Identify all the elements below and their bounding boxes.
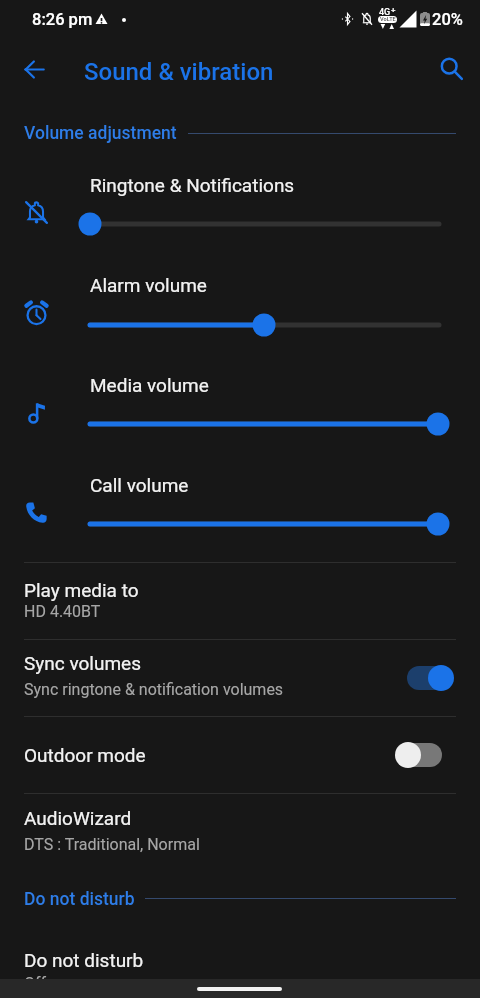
staticText: Do not disturb (24, 949, 144, 971)
staticText: Call volume (90, 474, 189, 496)
button[interactable]: Back (12, 47, 56, 91)
button[interactable] (0, 563, 480, 639)
button[interactable] (0, 930, 480, 998)
staticText: Off (24, 974, 47, 993)
staticText: 20% (432, 10, 463, 29)
button[interactable] (0, 794, 480, 870)
staticText: Sync ringtone & notification volumes (24, 680, 284, 699)
button[interactable]: Search (429, 46, 473, 90)
staticText: Alarm volume (90, 274, 207, 296)
staticText: Sound & vibration (84, 58, 274, 86)
staticText: Play media to (24, 579, 139, 601)
staticText: 4G (379, 7, 391, 18)
button[interactable] (0, 343, 480, 439)
staticText: 8:26 pm (32, 10, 93, 29)
staticText: Volume adjustment (24, 123, 177, 144)
staticText: Outdoor mode (24, 744, 146, 766)
staticText: Ringtone & Notifications (90, 174, 295, 196)
button[interactable] (0, 443, 480, 539)
staticText: Do not disturb (24, 889, 135, 910)
staticText: VoLTE (380, 16, 396, 23)
staticText: Media volume (90, 374, 209, 396)
button[interactable] (0, 640, 480, 716)
button[interactable] (0, 243, 480, 339)
button[interactable]: Toggle off (390, 736, 460, 774)
staticText: HD 4.40BT (24, 602, 101, 621)
staticText: + (391, 6, 396, 15)
staticText: AudioWizard (24, 807, 132, 829)
staticText: Sync volumes (24, 652, 141, 674)
button[interactable]: Toggle on (390, 659, 460, 697)
staticText: DTS : Traditional, Normal (24, 835, 200, 854)
button[interactable] (0, 143, 480, 239)
button[interactable] (0, 717, 480, 793)
